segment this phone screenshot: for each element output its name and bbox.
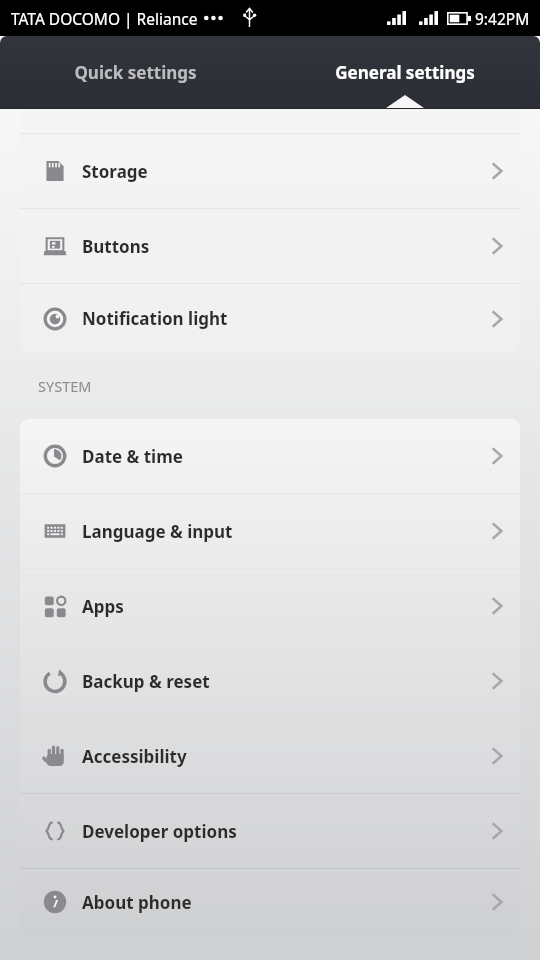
staticText: Quick settings — [74, 61, 197, 84]
staticText: Storage — [82, 160, 148, 183]
button[interactable]: Accessibility — [20, 719, 520, 793]
button[interactable]: Storage — [20, 134, 520, 208]
staticText: Language & input — [82, 520, 233, 543]
button[interactable]: Date & time — [20, 419, 520, 493]
button[interactable]: Buttons — [20, 209, 520, 283]
staticText: TATA DOCOMO | Reliance — [11, 8, 198, 29]
button[interactable]: Quick settings — [0, 36, 270, 108]
button[interactable]: Notification light — [20, 284, 520, 353]
staticText: General settings — [335, 61, 475, 84]
staticText: About phone — [82, 891, 192, 914]
button[interactable]: Apps — [20, 569, 520, 643]
button[interactable]: Language & input — [20, 494, 520, 568]
staticText: Notification light — [82, 307, 228, 330]
staticText: Apps — [82, 595, 124, 618]
staticText: Developer options — [82, 820, 237, 843]
button[interactable]: About phone — [20, 869, 520, 935]
staticText: Buttons — [82, 235, 150, 258]
staticText: Backup & reset — [82, 670, 210, 693]
staticText: SYSTEM — [38, 376, 92, 396]
button[interactable]: Developer options — [20, 794, 520, 868]
button[interactable]: Backup & reset — [20, 644, 520, 718]
button[interactable]: General settings — [270, 36, 540, 108]
staticText: Date & time — [82, 445, 183, 468]
staticText: 9:42PM — [475, 8, 530, 29]
staticText: Accessibility — [82, 745, 187, 768]
